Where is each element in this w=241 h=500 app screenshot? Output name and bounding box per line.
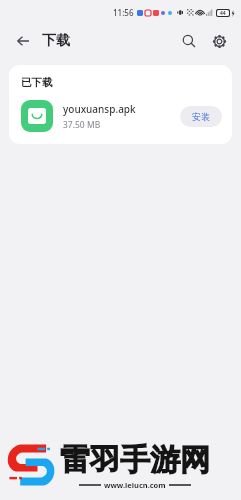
staticText: 11:56 [113,7,134,18]
staticText: 已下载 [21,76,53,89]
button[interactable]: Search [175,27,203,55]
staticText: 37.50 MB [63,119,101,131]
staticText: 安装 [192,111,210,122]
staticText: www.leiucn.com [104,480,166,490]
staticText: 44 [220,10,226,16]
button[interactable]: 安装 [180,106,222,127]
staticText: youxuansp.apk [63,102,136,116]
button[interactable]: Back [10,28,36,54]
button[interactable]: youxuansp.apk [21,100,222,132]
staticText: 雷羽手游网 [60,441,210,479]
staticText: 下载 [42,32,70,50]
button[interactable]: Settings [205,27,233,55]
